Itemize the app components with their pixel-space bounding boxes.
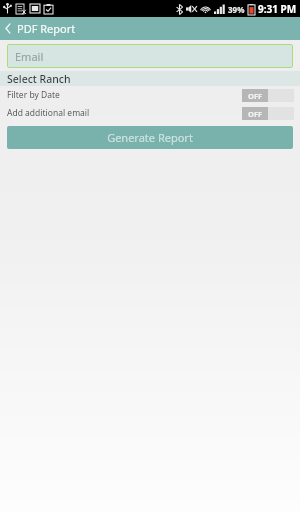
- button[interactable]: Email: [7, 44, 293, 68]
- staticText: Filter by Date: [7, 89, 60, 101]
- staticText: Select Ranch: [7, 72, 71, 86]
- button[interactable]: Toggle off: [242, 107, 294, 120]
- staticText: Generate Report: [107, 130, 193, 145]
- staticText: 9:31 PM: [258, 2, 297, 16]
- staticText: 39%: [228, 4, 245, 15]
- button[interactable]: Toggle off: [242, 89, 294, 102]
- staticText: OFF: [248, 109, 263, 119]
- button[interactable]: Generate Report: [7, 126, 293, 149]
- staticText: Email: [15, 49, 44, 64]
- staticText: PDF Report: [17, 21, 76, 36]
- button[interactable]: Filter by Date: [0, 86, 300, 104]
- staticText: OFF: [248, 91, 263, 101]
- button[interactable]: Select Ranch: [0, 71, 300, 86]
- button[interactable]: Back: [0, 21, 82, 36]
- staticText: Add additional email: [7, 107, 90, 119]
- button[interactable]: Add additional email: [0, 104, 300, 122]
